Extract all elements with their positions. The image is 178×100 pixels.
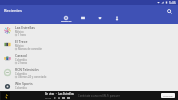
- staticText: México: [15, 44, 24, 48]
- staticText: México: [15, 30, 24, 34]
- staticText: En vivo · Las Estrellas: [45, 92, 74, 96]
- staticText: Caracol: [15, 53, 28, 58]
- staticText: El Trece: [15, 39, 28, 44]
- staticText: Recientes: [4, 8, 23, 13]
- staticText: Recientes: [61, 20, 72, 23]
- staticText: 2 horas: [18, 61, 28, 65]
- staticText: Colombia: [15, 86, 27, 90]
- button[interactable]: Canales: [77, 16, 89, 20]
- staticText: 1 hora: [18, 33, 26, 37]
- button[interactable]: Caracol: [0, 52, 178, 66]
- staticText: Últimos 24 y conectado: [18, 75, 47, 79]
- staticText: Marcas de conexión: [18, 47, 43, 51]
- staticText: Colombia: [15, 58, 27, 62]
- button[interactable]: Search: [165, 7, 174, 16]
- button[interactable]: ACTIVAR: [161, 93, 175, 98]
- button[interactable]: Favoritos: [94, 16, 106, 20]
- button[interactable]: Recientes: [60, 16, 72, 23]
- staticText: 5:46: [169, 0, 176, 5]
- staticText: Colombia: [15, 72, 27, 76]
- staticText: Las Estrellas: [15, 25, 35, 30]
- button[interactable]: RCN Televisión: [0, 66, 178, 80]
- staticText: Win Sports: [15, 81, 33, 86]
- button[interactable]: Las Estrellas: [0, 24, 178, 38]
- button[interactable]: El Trece: [0, 38, 178, 52]
- button[interactable]: Perfil: [111, 16, 123, 20]
- staticText: RCN Televisión: [15, 67, 39, 72]
- staticText: Conéctate a una red Wi-Fi para ver: [78, 94, 120, 98]
- staticText: ACTIVAR: [163, 94, 173, 97]
- staticText: 00:00: [45, 96, 52, 99]
- button[interactable]: Win Sports: [0, 80, 178, 91]
